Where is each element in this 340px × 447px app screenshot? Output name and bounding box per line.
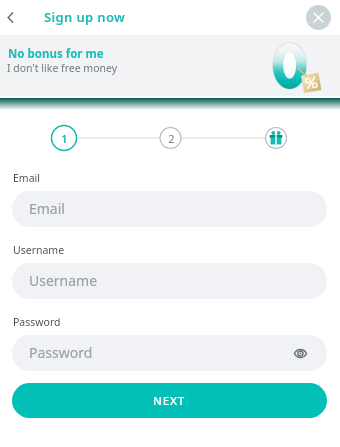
- button[interactable]: Step 2: [158, 125, 184, 151]
- staticText: I don't like free money: [7, 61, 118, 75]
- staticText: NEXT: [153, 393, 186, 409]
- staticText: 2: [168, 131, 175, 146]
- staticText: Email: [29, 199, 65, 218]
- staticText: No bonus for me: [8, 46, 104, 62]
- button[interactable]: Step 1: [51, 125, 77, 151]
- staticText: Sign up now: [44, 8, 126, 26]
- staticText: 1: [61, 131, 68, 146]
- staticText: Username: [29, 271, 98, 290]
- staticText: Password: [13, 315, 61, 329]
- staticText: Password: [29, 343, 93, 362]
- button[interactable]: Back: [0, 4, 23, 30]
- button[interactable]: Username: [12, 263, 327, 299]
- button[interactable]: NEXT: [12, 383, 327, 418]
- button[interactable]: Password: [12, 335, 327, 371]
- button[interactable]: Close: [306, 5, 331, 30]
- button[interactable]: Show password: [290, 343, 310, 363]
- button[interactable]: No bonus for me: [0, 35, 340, 96]
- staticText: Username: [13, 243, 65, 257]
- button[interactable]: Email: [12, 191, 327, 227]
- staticText: Email: [13, 171, 40, 185]
